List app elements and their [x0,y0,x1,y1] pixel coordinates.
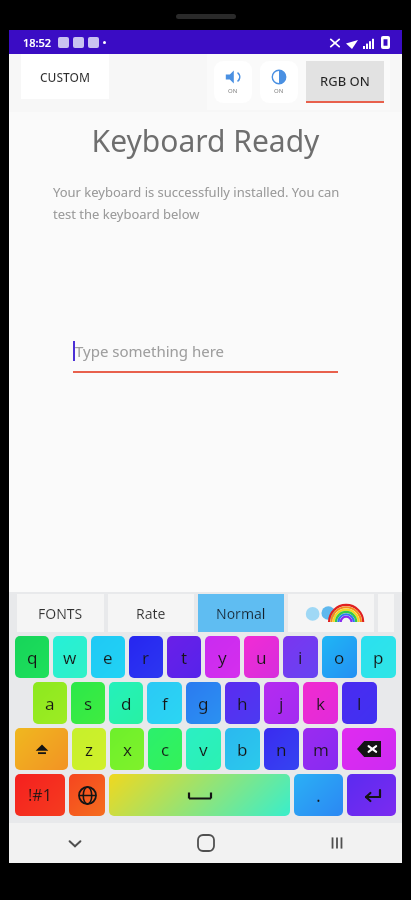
staticText: !#1 [28,784,52,806]
staticText: Type something here [75,341,225,361]
button[interactable]: p [361,636,396,678]
staticText: l [357,692,362,715]
button[interactable]: g [186,682,221,724]
button[interactable]: f [147,682,182,724]
staticText: RGB ON [320,72,370,90]
button[interactable]: Backspace [342,728,396,770]
staticText: Keyboard Ready [9,120,402,161]
other: Shift [33,740,51,758]
button[interactable]: x [110,728,144,770]
staticText: 18:52 [23,35,52,50]
staticText: p [373,646,384,669]
staticText: m [313,738,329,761]
staticText: w [63,646,77,669]
button[interactable]: FONTS [17,594,104,632]
button[interactable]: Rate [108,594,194,632]
button[interactable]: h [225,682,260,724]
button[interactable]: r [129,636,163,678]
staticText: b [237,738,248,761]
button[interactable]: Language [69,774,105,816]
button[interactable]: w [53,636,87,678]
staticText: t [181,646,188,669]
button[interactable]: !#1 [15,774,65,816]
staticText: y [218,646,227,669]
button[interactable]: m [303,728,338,770]
button[interactable]: Shift [15,728,68,770]
staticText: v [199,738,208,761]
staticText: h [237,692,248,715]
staticText: k [316,692,326,715]
staticText: s [84,692,93,715]
button[interactable]: b [225,728,260,770]
button[interactable]: Space [109,774,290,816]
button[interactable]: . [294,774,343,816]
button[interactable]: s [71,682,105,724]
staticText: c [161,738,170,761]
button[interactable]: Recents [271,823,402,863]
staticText: i [298,646,303,669]
button[interactable]: k [303,682,338,724]
button[interactable]: Hide keyboard [9,823,140,863]
button[interactable]: j [264,682,299,724]
button[interactable]: Home [140,823,271,863]
staticText: o [334,646,345,669]
button[interactable]: z [72,728,106,770]
other: Space [189,790,211,800]
staticText: ON [274,87,284,95]
button[interactable]: i [283,636,318,678]
button[interactable]: v [186,728,221,770]
button[interactable]: RGB ON [306,61,384,103]
staticText: z [85,738,93,761]
button[interactable]: a [33,682,67,724]
button[interactable]: Normal [198,594,284,632]
button[interactable]: e [91,636,125,678]
staticText: CUSTOM [40,69,91,85]
staticText: r [142,646,150,669]
button[interactable]: q [15,636,49,678]
button[interactable]: Vibration on [260,61,298,103]
button[interactable]: y [205,636,240,678]
staticText: d [121,692,132,715]
staticText: FONTS [38,604,83,623]
staticText: u [256,646,267,669]
staticText: . [316,783,321,808]
other: Language [78,786,97,805]
button[interactable]: o [322,636,357,678]
staticText: Normal [216,604,266,623]
button[interactable]: CUSTOM [21,54,109,99]
staticText: g [198,692,209,715]
button[interactable]: u [244,636,279,678]
other: Enter [362,785,382,805]
staticText: x [123,738,132,761]
staticText: f [162,692,168,715]
staticText: ON [228,87,238,95]
button[interactable]: d [109,682,143,724]
staticText: a [45,692,55,715]
staticText: Rate [136,604,166,623]
button[interactable]: Themes [288,594,374,632]
button[interactable]: n [264,728,299,770]
button[interactable]: l [342,682,377,724]
button[interactable]: Enter [347,774,396,816]
staticText: q [27,646,38,669]
button[interactable]: c [148,728,182,770]
other: Backspace [357,741,381,757]
staticText: n [276,738,287,761]
button[interactable]: Sound on [214,61,252,103]
staticText: Your keyboard is successfully installed.… [53,183,358,223]
staticText: e [103,646,113,669]
staticText: j [279,692,284,715]
button[interactable]: t [167,636,201,678]
